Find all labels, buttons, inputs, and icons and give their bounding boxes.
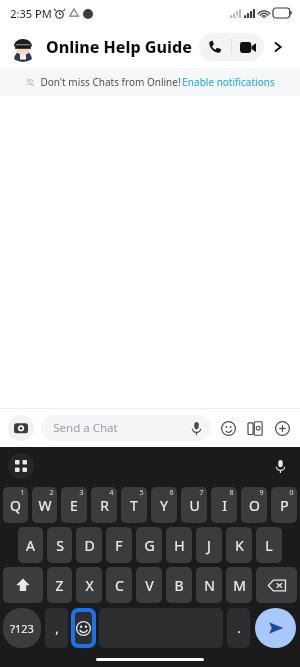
staticText: 5 xyxy=(139,488,144,498)
button[interactable]: X xyxy=(76,567,102,603)
staticText: K xyxy=(235,536,244,555)
button[interactable]: P xyxy=(271,487,297,523)
staticText: L xyxy=(265,536,273,555)
staticText: Z xyxy=(55,576,64,595)
button[interactable]: J xyxy=(196,527,222,563)
button[interactable]: Profile avatar xyxy=(8,32,38,62)
button[interactable]: Bitmoji xyxy=(245,418,265,438)
button[interactable]: C xyxy=(106,567,132,603)
button[interactable]: Voice input xyxy=(268,454,292,478)
button[interactable]: S xyxy=(47,527,72,563)
button[interactable]: Emoji xyxy=(75,612,92,644)
button[interactable]: Q xyxy=(3,487,28,523)
button[interactable]: Camera xyxy=(8,415,34,441)
staticText: G xyxy=(144,536,155,555)
staticText: M xyxy=(233,576,246,595)
staticText: N xyxy=(204,576,215,595)
staticText: 8 xyxy=(229,488,234,498)
button[interactable]: D xyxy=(76,527,102,563)
button[interactable]: ?123 xyxy=(3,608,41,648)
staticText: 7 xyxy=(199,488,204,498)
staticText: . xyxy=(237,619,241,637)
button[interactable]: Video call xyxy=(232,33,264,61)
staticText: V xyxy=(145,576,154,595)
staticText: 2 xyxy=(49,488,54,498)
staticText: 4 xyxy=(109,488,114,498)
button[interactable]: Y xyxy=(151,487,177,523)
button[interactable]: H xyxy=(166,527,192,563)
button[interactable]: Don't miss Chats from Online! xyxy=(0,68,300,96)
button[interactable]: E xyxy=(61,487,87,523)
staticText: A xyxy=(26,536,35,555)
staticText: X xyxy=(85,576,94,595)
button[interactable]: L xyxy=(256,527,282,563)
button[interactable]: K xyxy=(226,527,252,563)
staticText: F xyxy=(115,536,123,555)
button[interactable]: R xyxy=(91,487,117,523)
button[interactable]: U xyxy=(181,487,207,523)
button[interactable]: F xyxy=(106,527,132,563)
staticText: H xyxy=(174,536,185,555)
button[interactable]: Call xyxy=(199,33,231,61)
staticText: R xyxy=(100,496,109,515)
button[interactable]: Send xyxy=(255,608,296,648)
staticText: J xyxy=(207,536,211,555)
staticText: 3 xyxy=(79,488,84,498)
staticText: O xyxy=(249,496,260,515)
button[interactable]: G xyxy=(136,527,162,563)
staticText: P xyxy=(280,496,289,515)
button[interactable]: I xyxy=(211,487,237,523)
button[interactable]: Z xyxy=(47,567,72,603)
button[interactable]: N xyxy=(196,567,222,603)
staticText: Don't miss Chats from Online! xyxy=(39,75,182,89)
button[interactable]: B xyxy=(166,567,192,603)
button[interactable]: Stickers xyxy=(218,418,238,438)
staticText: 1 xyxy=(20,488,25,498)
staticText: B xyxy=(174,576,184,595)
button[interactable]: M xyxy=(226,567,252,603)
button[interactable]: More options xyxy=(272,418,292,438)
button[interactable]: W xyxy=(32,487,57,523)
staticText: 0 xyxy=(289,488,294,498)
staticText: T xyxy=(130,496,138,515)
staticText: D xyxy=(84,536,95,555)
staticText: Enable notifications xyxy=(182,75,275,89)
button[interactable]: More xyxy=(264,33,292,61)
staticText: 6 xyxy=(169,488,174,498)
button[interactable]: Backspace xyxy=(256,567,297,603)
button[interactable]: T xyxy=(121,487,147,523)
staticText: , xyxy=(55,619,59,637)
staticText: Send a Chat xyxy=(53,420,118,436)
staticText: C xyxy=(115,576,124,595)
staticText: 2:35 PM xyxy=(10,6,52,21)
staticText: ?123 xyxy=(10,621,34,636)
staticText: Q xyxy=(10,496,21,515)
button[interactable]: Keyboard tools xyxy=(8,453,34,479)
staticText: I xyxy=(222,496,227,515)
staticText: U xyxy=(189,496,200,515)
button[interactable]: Period xyxy=(227,608,250,648)
button[interactable]: A xyxy=(18,527,43,563)
button[interactable]: Shift xyxy=(3,567,43,603)
staticText: 9 xyxy=(259,488,264,498)
button[interactable]: O xyxy=(241,487,267,523)
staticText: S xyxy=(56,536,64,555)
staticText: E xyxy=(70,496,78,515)
button[interactable]: Send a Chat xyxy=(41,415,211,441)
button[interactable]: Comma xyxy=(45,608,68,648)
staticText: Online Help Guide xyxy=(46,36,192,58)
staticText: Y xyxy=(160,496,168,515)
staticText: W xyxy=(38,496,52,515)
button[interactable]: V xyxy=(136,567,162,603)
